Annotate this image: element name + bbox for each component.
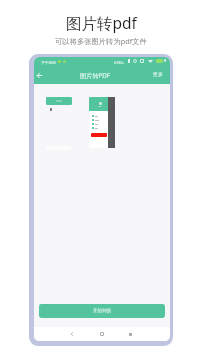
- button[interactable]: Home: [96, 328, 108, 340]
- button[interactable]: Recent apps: [124, 328, 136, 340]
- button[interactable]: 开始转换: [39, 304, 165, 318]
- staticText: 可以将多张图片转为pdf文件: [55, 36, 147, 46]
- staticText: 更多: [153, 71, 163, 77]
- staticText: 图片转pdf: [66, 12, 137, 33]
- button[interactable]: Back: [66, 328, 78, 340]
- button[interactable]: [46, 97, 72, 105]
- button[interactable]: Back: [34, 69, 45, 81]
- staticText: 开始转换: [93, 308, 112, 314]
- staticText: 0.0K/s: [114, 60, 124, 64]
- staticText: 图片转PDF: [80, 71, 111, 79]
- button[interactable]: 更多: [152, 69, 164, 79]
- staticText: 下午3:53: [41, 60, 56, 65]
